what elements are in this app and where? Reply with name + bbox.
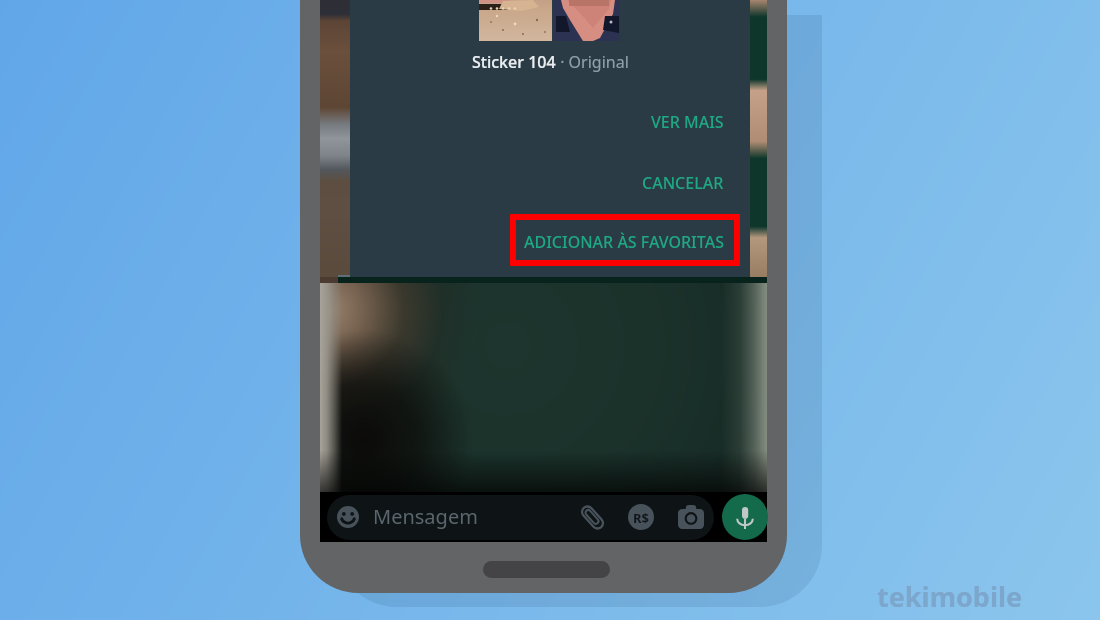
button[interactable]: Record voice message <box>722 494 768 540</box>
staticText: Mensagem <box>373 503 478 530</box>
staticText: Sticker 104 <box>472 51 556 73</box>
staticText: VER MAIS <box>651 111 724 133</box>
staticText: ADICIONAR ÀS FAVORITAS <box>524 231 724 253</box>
button[interactable]: Payments <box>628 504 654 530</box>
button[interactable]: CANCELAR <box>350 167 750 199</box>
staticText: tekimobile <box>877 578 1023 615</box>
staticText: R$ <box>633 509 649 527</box>
button[interactable]: Camera <box>678 505 704 529</box>
button[interactable]: Attach file <box>579 504 606 531</box>
button[interactable]: ADICIONAR ÀS FAVORITAS <box>350 226 750 258</box>
button[interactable]: VER MAIS <box>350 106 750 138</box>
staticText: CANCELAR <box>642 172 724 194</box>
staticText: · Original <box>556 51 629 73</box>
button[interactable]: Emoji <box>337 506 359 528</box>
